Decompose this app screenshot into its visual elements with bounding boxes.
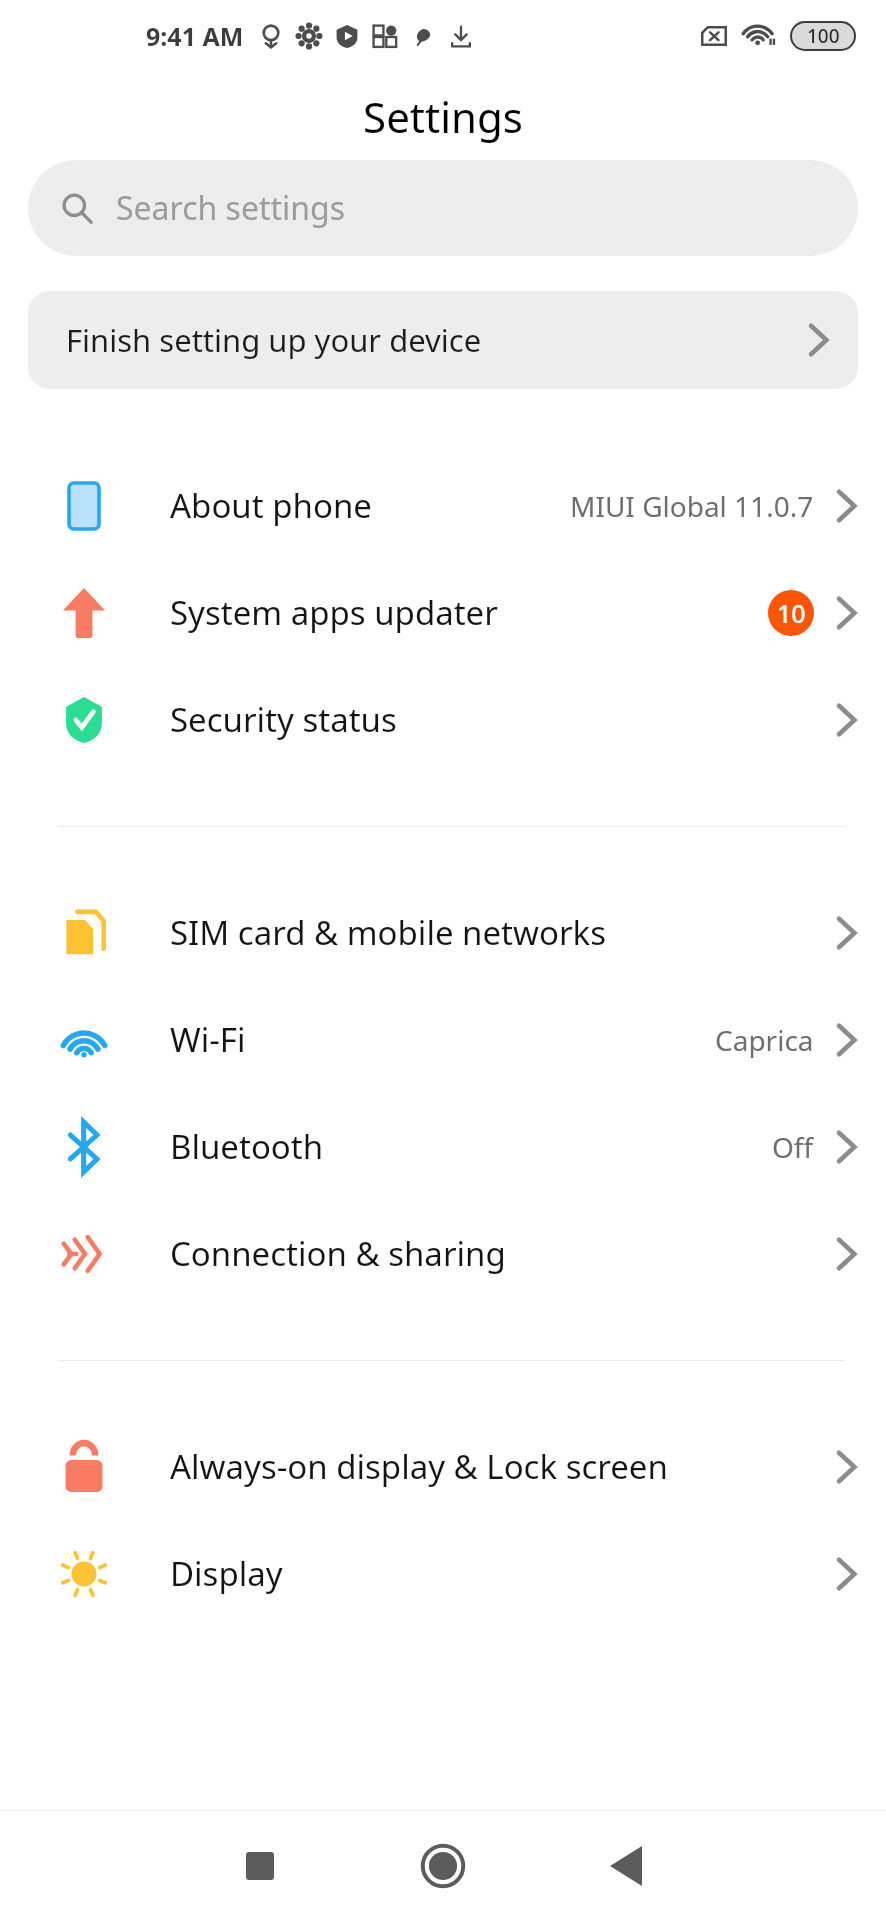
staticText: Connection & sharing — [170, 1231, 506, 1276]
button[interactable]: Finish setting up your device — [28, 291, 858, 389]
button[interactable]: Display — [0, 1520, 886, 1627]
button[interactable]: Connection & sharing — [0, 1200, 886, 1307]
button[interactable]: Recent apps — [212, 1818, 308, 1914]
staticText: 9:41 AM — [146, 19, 244, 53]
button[interactable]: Back — [578, 1818, 674, 1914]
staticText: Always-on display & Lock screen — [170, 1444, 668, 1489]
button[interactable]: Bluetooth — [0, 1093, 886, 1200]
staticText: Wi-Fi — [170, 1017, 246, 1062]
staticText: Search settings — [116, 186, 346, 230]
staticText: Finish setting up your device — [66, 319, 482, 361]
staticText: Security status — [170, 697, 397, 742]
button[interactable]: SIM card & mobile networks — [0, 879, 886, 986]
staticText: Bluetooth — [170, 1124, 324, 1169]
staticText: About phone — [170, 483, 372, 528]
button[interactable]: About phone — [0, 452, 886, 559]
button[interactable]: Home — [395, 1818, 491, 1914]
staticText: Off — [772, 1128, 814, 1166]
staticText: Settings — [363, 88, 523, 145]
staticText: MIUI Global 11.0.7 — [570, 487, 814, 525]
button[interactable]: Always-on display & Lock screen — [0, 1413, 886, 1520]
staticText: Display — [170, 1551, 283, 1596]
staticText: 10 — [777, 596, 806, 630]
staticText: SIM card & mobile networks — [170, 910, 606, 955]
staticText: 100 — [807, 23, 840, 49]
button[interactable]: Search settings — [28, 160, 858, 256]
button[interactable]: Wi-Fi — [0, 986, 886, 1093]
button[interactable]: Security status — [0, 666, 886, 773]
staticText: Caprica — [715, 1021, 814, 1059]
button[interactable]: System apps updater — [0, 559, 886, 666]
staticText: System apps updater — [170, 590, 498, 635]
